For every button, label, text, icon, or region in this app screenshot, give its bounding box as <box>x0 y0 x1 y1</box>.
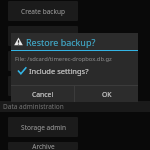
button[interactable]: Auto backup <box>8 51 78 71</box>
staticText: Restore backup? <box>26 36 96 48</box>
button[interactable]: Cancel <box>11 86 74 102</box>
staticText: Data administration <box>3 102 64 111</box>
button[interactable]: OK <box>75 86 138 102</box>
staticText: OK <box>102 90 112 99</box>
staticText: File: /sdcard/timerec-dropbox.db.gz <box>15 55 112 63</box>
staticText: Storage admin <box>21 123 66 132</box>
button[interactable]: Archive <box>8 142 78 150</box>
staticText: Archive <box>32 142 55 150</box>
button[interactable]: Storage admin <box>8 117 78 137</box>
staticText: Include settings? <box>29 66 89 76</box>
other: Warning <box>14 37 23 46</box>
button[interactable]: Create backup <box>8 1 78 21</box>
staticText: Auto backup <box>24 57 63 66</box>
staticText: Restore <box>31 32 55 41</box>
button[interactable]: Dropbox sync <box>8 76 78 96</box>
staticText: Create backup <box>21 7 65 16</box>
button[interactable]: Include settings, checked <box>15 66 134 76</box>
button[interactable]: Restore <box>8 26 78 46</box>
other: Include settings, checked <box>18 67 26 75</box>
staticText: Dropbox sync <box>22 82 64 91</box>
staticText: Cancel <box>32 90 54 99</box>
